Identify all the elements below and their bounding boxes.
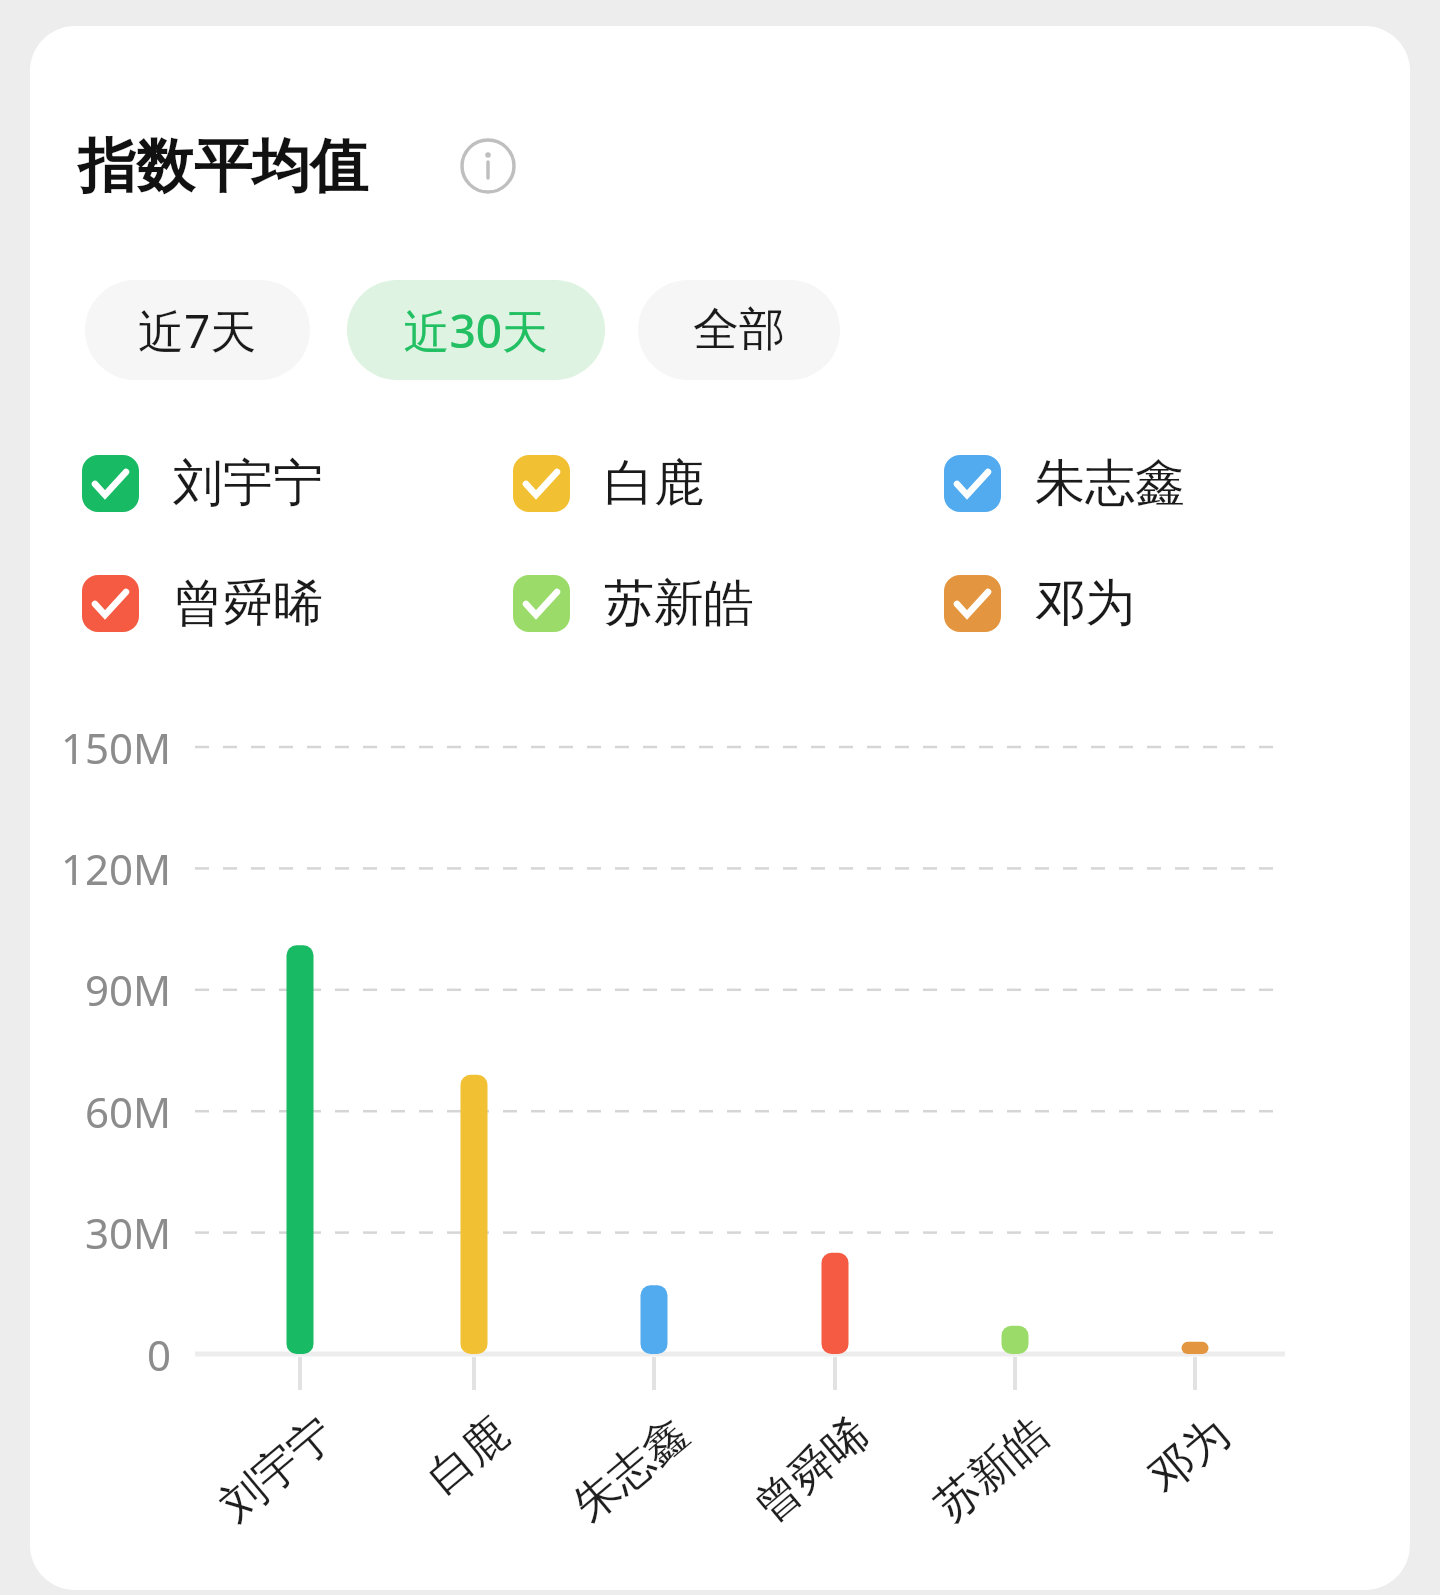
button[interactable] (85, 280, 310, 380)
button[interactable] (944, 452, 1324, 516)
button[interactable] (82, 572, 462, 636)
button[interactable]: 信息 (458, 136, 518, 196)
button[interactable] (347, 280, 605, 380)
button[interactable] (76, 120, 436, 212)
button[interactable] (513, 452, 893, 516)
button[interactable] (944, 572, 1324, 636)
button[interactable] (638, 280, 840, 380)
button[interactable] (82, 452, 462, 516)
button[interactable] (513, 572, 893, 636)
